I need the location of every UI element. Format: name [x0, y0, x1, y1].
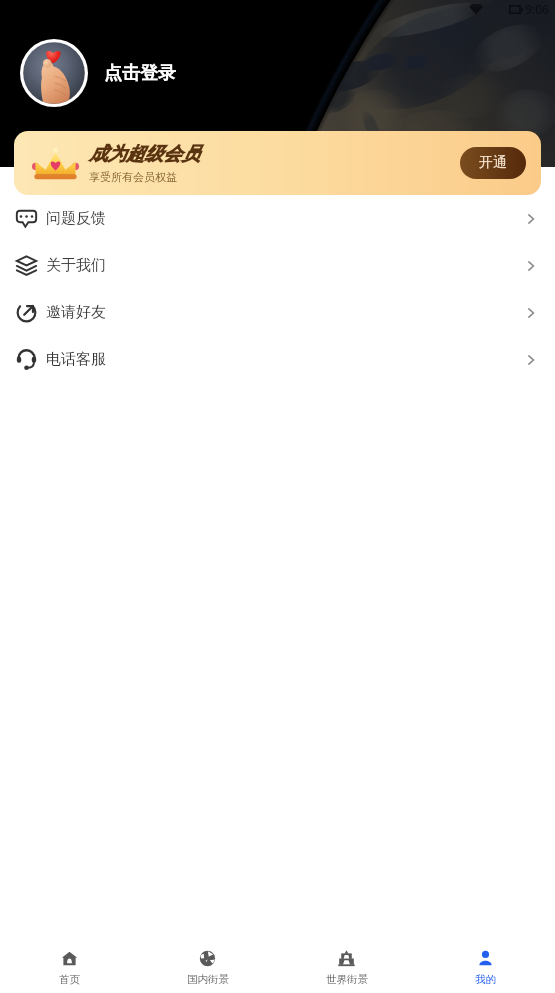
staticText: 国内街景: [187, 973, 229, 986]
staticText: 9:06: [525, 1, 549, 17]
staticText: 邀请好友: [46, 303, 106, 322]
staticText: 关于我们: [46, 256, 106, 275]
button[interactable]: 首页: [0, 939, 138, 993]
staticText: 点击登录: [104, 62, 176, 85]
staticText: 成为超级会员: [89, 142, 200, 165]
staticText: 开通: [479, 154, 507, 172]
staticText: 问题反馈: [46, 209, 106, 228]
staticText: 世界街景: [326, 973, 368, 986]
staticText: 电话客服: [46, 350, 106, 369]
button[interactable]: 我的: [416, 939, 555, 993]
button[interactable]: 成为超级会员: [14, 131, 541, 195]
button[interactable]: 关于我们: [0, 242, 555, 289]
staticText: 享受所有会员权益: [89, 170, 177, 184]
staticText: 首页: [59, 973, 80, 986]
button[interactable]: 问题反馈: [0, 195, 555, 242]
button[interactable]: 世界街景: [277, 939, 416, 993]
staticText: 我的: [475, 973, 496, 986]
button[interactable]: 国内街景: [138, 939, 277, 993]
button[interactable]: 开通: [460, 147, 526, 179]
button[interactable]: 电话客服: [0, 336, 555, 383]
button[interactable]: 邀请好友: [0, 289, 555, 336]
